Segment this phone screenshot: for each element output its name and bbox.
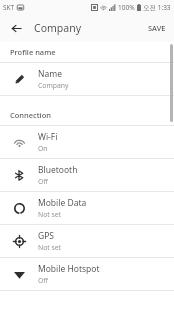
button[interactable]: Edit profile name xyxy=(0,63,174,95)
staticText: SAVE xyxy=(148,23,166,33)
button[interactable]: Mobile Data settings xyxy=(0,192,174,224)
staticText: GPS xyxy=(38,230,54,242)
staticText: 오전 1:33 xyxy=(143,3,171,12)
button[interactable]: Mobile Hotspot settings xyxy=(0,258,174,290)
staticText: 100% xyxy=(118,3,135,12)
staticText: Company xyxy=(38,81,69,90)
staticText: Wi-Fi xyxy=(38,131,58,143)
staticText: Bluetooth xyxy=(38,164,78,176)
staticText: Company xyxy=(34,21,81,35)
staticText: On xyxy=(38,144,48,153)
staticText: Connection xyxy=(10,110,51,120)
staticText: Mobile Hotspot xyxy=(38,263,100,275)
button[interactable]: Wi-Fi settings xyxy=(0,126,174,158)
staticText: Not set xyxy=(38,210,62,219)
staticText: SKT xyxy=(3,3,15,12)
staticText: Name xyxy=(38,68,62,80)
button[interactable]: Bluetooth settings xyxy=(0,159,174,191)
staticText: Off xyxy=(38,276,48,285)
button[interactable]: Back xyxy=(5,17,27,39)
staticText: Off xyxy=(38,177,48,186)
staticText: Mobile Data xyxy=(38,197,87,209)
staticText: Profile name xyxy=(10,47,56,57)
button[interactable]: GPS settings xyxy=(0,225,174,257)
staticText: Not set xyxy=(38,243,62,252)
button[interactable]: SAVE xyxy=(144,19,170,37)
